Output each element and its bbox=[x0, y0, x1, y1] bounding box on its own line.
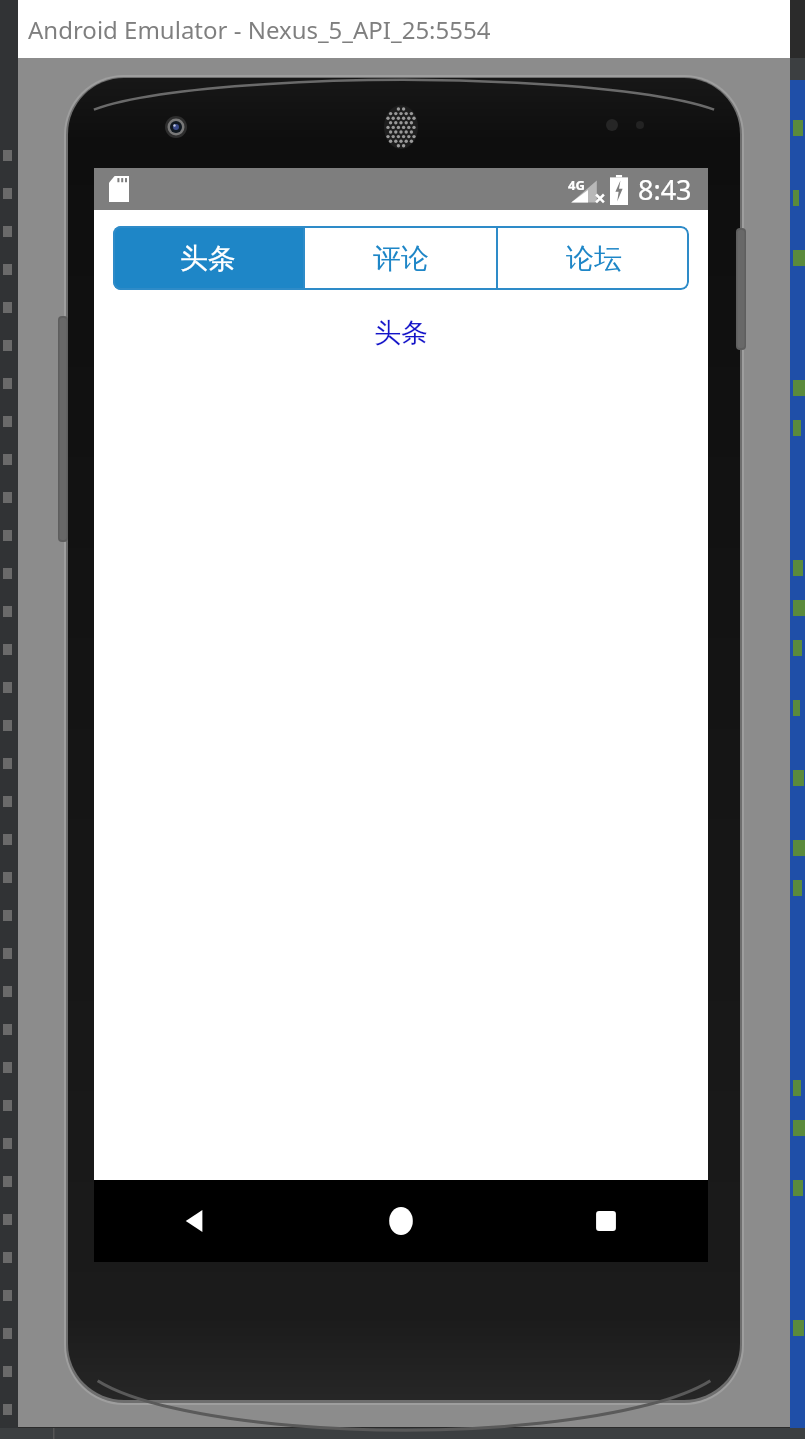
button[interactable]: Recent apps bbox=[503, 1180, 708, 1262]
staticText: 头条 bbox=[94, 316, 708, 350]
staticText: 论坛 bbox=[566, 241, 622, 276]
button[interactable]: 头条 bbox=[113, 226, 303, 290]
staticText: 头条 bbox=[180, 241, 236, 276]
button[interactable]: 论坛 bbox=[498, 226, 689, 290]
button[interactable]: 评论 bbox=[305, 226, 496, 290]
staticText: Android Emulator - Nexus_5_API_25:5554 bbox=[28, 13, 491, 46]
staticText: 4G bbox=[568, 176, 585, 194]
button[interactable]: Back bbox=[94, 1180, 298, 1262]
staticText: 8:43 bbox=[638, 171, 692, 208]
button[interactable]: Home bbox=[298, 1180, 503, 1262]
staticText: 评论 bbox=[373, 241, 429, 276]
